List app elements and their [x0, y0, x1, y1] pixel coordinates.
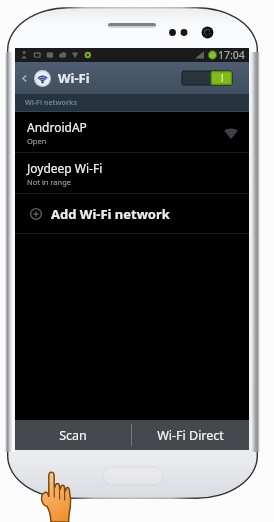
staticText: Wi-Fi Direct	[157, 427, 224, 444]
button[interactable]: Scan	[15, 420, 131, 450]
button[interactable]: Wi-Fi on off switch	[182, 71, 232, 85]
staticText: Open	[27, 136, 47, 146]
staticText: Add Wi-Fi network	[51, 205, 170, 223]
staticText: Joydeep Wi-Fi	[27, 160, 103, 176]
staticText: Scan	[59, 427, 87, 444]
button[interactable]: Wi-Fi Direct	[132, 420, 249, 450]
staticText: 17:04	[218, 48, 245, 62]
button[interactable]: Joydeep Wi-Fi	[15, 153, 249, 194]
staticText: AndroidAP	[27, 119, 87, 135]
button[interactable]: Back	[15, 62, 34, 94]
staticText: Not in range	[27, 177, 72, 187]
staticText: Wi-Fi networks	[25, 98, 77, 108]
staticText: Wi-Fi	[58, 69, 90, 87]
button[interactable]: Add Wi-Fi network	[15, 194, 249, 234]
button[interactable]: AndroidAP	[15, 112, 249, 153]
